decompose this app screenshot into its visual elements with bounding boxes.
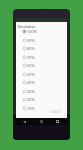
button[interactable]: 10% (16, 104, 67, 113)
staticText: 40% (27, 80, 35, 85)
button[interactable]: 40% (16, 78, 67, 87)
button[interactable]: Back (20, 118, 29, 125)
staticText: 50% (27, 72, 35, 77)
button[interactable]: 100% (16, 27, 67, 36)
staticText: 10% (27, 106, 35, 111)
button[interactable]: 50% (16, 70, 67, 79)
staticText: 20% (27, 97, 35, 102)
button[interactable]: Recent apps (53, 118, 62, 125)
staticText: CANCEL (50, 110, 62, 114)
staticText: 60% (27, 63, 35, 68)
button[interactable]: 70% (16, 53, 67, 62)
button[interactable]: 60% (16, 61, 67, 70)
button[interactable]: CANCEL (50, 109, 67, 115)
staticText: 90% (27, 38, 35, 43)
staticText: 70% (27, 55, 35, 60)
staticText: 30% (27, 89, 35, 94)
staticText: 80% (27, 46, 35, 51)
staticText: Resolution (18, 24, 36, 29)
button[interactable]: 80% (16, 44, 67, 53)
button[interactable]: Home (37, 118, 46, 125)
button[interactable]: 20% (16, 95, 67, 104)
staticText: 100% (27, 29, 37, 34)
button[interactable]: 30% (16, 87, 67, 96)
button[interactable]: 90% (16, 36, 67, 45)
